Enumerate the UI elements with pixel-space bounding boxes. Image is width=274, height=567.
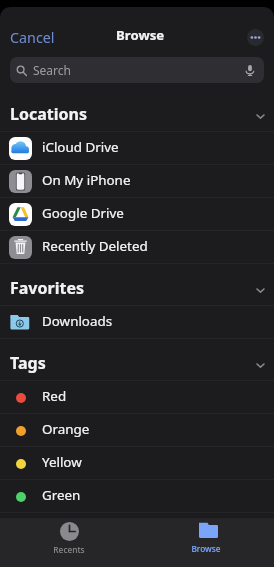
staticText: Recents: [53, 544, 85, 555]
staticText: Google Drive: [42, 204, 124, 222]
button[interactable]: Tags: [0, 339, 274, 381]
button[interactable]: Green: [0, 480, 274, 513]
staticText: Green: [42, 486, 81, 504]
staticText: Downloads: [42, 312, 113, 330]
button[interactable]: Cancel: [6, 25, 59, 50]
staticText: Browse: [191, 543, 221, 554]
staticText: Favorites: [10, 277, 84, 299]
staticText: Recently Deleted: [42, 237, 148, 255]
button[interactable]: Google Drive: [0, 198, 274, 231]
staticText: On My iPhone: [42, 171, 131, 189]
staticText: Locations: [10, 103, 87, 125]
button[interactable]: Orange: [0, 414, 274, 447]
button[interactable]: More options: [247, 29, 264, 46]
button[interactable]: Favorites: [0, 264, 274, 306]
staticText: Orange: [42, 420, 90, 438]
staticText: Yellow: [42, 453, 82, 471]
button[interactable]: Search: [10, 57, 264, 83]
button[interactable]: Recents: [0, 518, 137, 567]
staticText: Tags: [10, 352, 46, 374]
staticText: Red: [42, 387, 67, 405]
button[interactable]: Yellow: [0, 447, 274, 480]
button[interactable]: Red: [0, 381, 274, 414]
button[interactable]: On My iPhone: [0, 165, 274, 198]
button[interactable]: Downloads: [0, 306, 274, 339]
staticText: Browse: [116, 26, 165, 44]
button[interactable]: Recently Deleted: [0, 231, 274, 264]
button[interactable]: Browse: [137, 518, 274, 567]
button[interactable]: Locations: [0, 83, 274, 132]
staticText: iCloud Drive: [42, 138, 119, 156]
button[interactable]: iCloud Drive: [0, 132, 274, 165]
staticText: Cancel: [10, 28, 55, 47]
staticText: Search: [33, 62, 71, 78]
